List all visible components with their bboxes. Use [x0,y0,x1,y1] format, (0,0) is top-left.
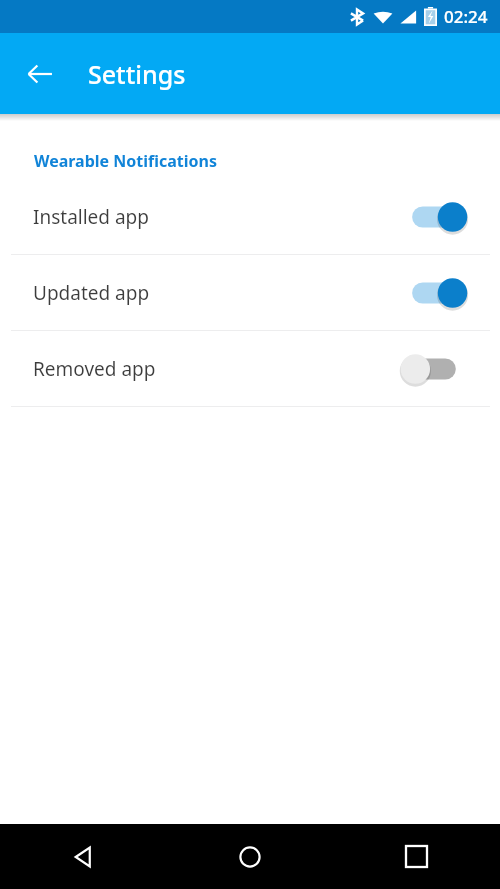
button[interactable]: Updated app [0,255,500,330]
button[interactable]: Removed app [0,331,500,406]
staticText: 02:24 [444,5,488,28]
button[interactable]: On [411,277,467,309]
button[interactable]: Off [411,353,467,385]
staticText: Settings [88,57,186,91]
button[interactable]: Back [16,50,64,98]
button[interactable]: Home [166,824,333,889]
button[interactable]: Recents [333,824,500,889]
button[interactable]: Installed app [0,179,500,254]
button[interactable]: On [411,201,467,233]
staticText: Wearable Notifications [34,150,217,172]
staticText: Removed app [33,356,411,382]
button[interactable]: Back [0,824,166,889]
staticText: Installed app [33,204,411,230]
staticText: Updated app [33,280,411,306]
